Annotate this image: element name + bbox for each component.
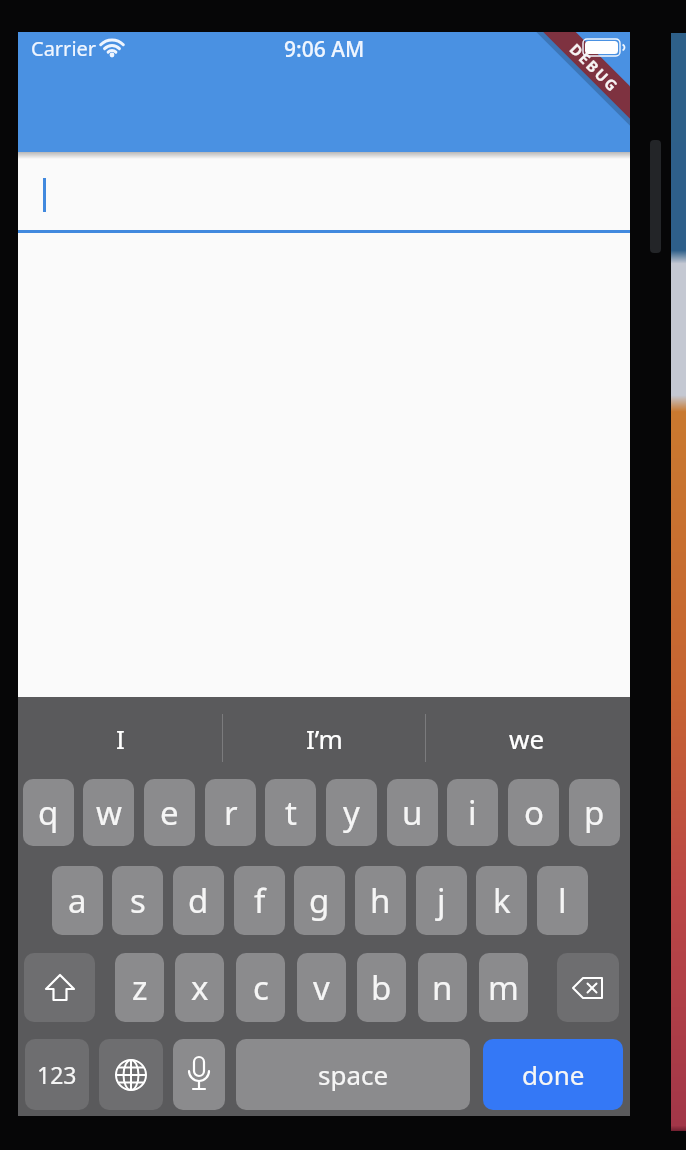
button[interactable] [18, 158, 630, 233]
staticText: 9:06 AM [284, 35, 365, 64]
staticText: v [313, 965, 330, 1010]
staticText: q [38, 790, 59, 835]
button[interactable]: i [447, 779, 498, 846]
staticText: y [343, 790, 360, 835]
button[interactable] [99, 1039, 163, 1110]
button[interactable]: done [483, 1039, 623, 1110]
staticText: DEBUG [566, 39, 624, 97]
button[interactable]: c [236, 953, 285, 1022]
staticText: n [432, 965, 453, 1010]
button[interactable] [557, 953, 619, 1022]
staticText: k [493, 878, 511, 923]
staticText: d [188, 878, 209, 923]
button[interactable]: f [234, 866, 285, 935]
button[interactable]: x [175, 953, 224, 1022]
staticText: o [524, 790, 544, 835]
button[interactable]: v [297, 953, 346, 1022]
staticText: z [132, 965, 148, 1010]
staticText: b [371, 965, 392, 1010]
staticText: we [509, 721, 545, 756]
button[interactable]: m [479, 953, 528, 1022]
button[interactable]: I [22, 707, 218, 769]
button[interactable]: b [357, 953, 406, 1022]
button[interactable]: j [416, 866, 467, 935]
button[interactable]: g [294, 866, 345, 935]
button[interactable]: q [23, 779, 74, 846]
staticText: x [191, 965, 209, 1010]
button[interactable]: n [418, 953, 467, 1022]
staticText: a [68, 878, 87, 923]
staticText: I’m [306, 721, 343, 756]
button[interactable]: w [83, 779, 134, 846]
staticText: g [309, 878, 330, 923]
button[interactable]: r [205, 779, 256, 846]
button[interactable]: d [173, 866, 224, 935]
staticText: done [522, 1057, 585, 1092]
button[interactable]: z [115, 953, 164, 1022]
staticText: w [96, 790, 122, 835]
staticText: s [130, 878, 146, 923]
staticText: j [437, 878, 446, 923]
staticText: m [488, 965, 519, 1010]
button[interactable]: I’m [226, 707, 422, 769]
button[interactable]: l [537, 866, 588, 935]
button[interactable]: space [236, 1039, 470, 1110]
button[interactable]: h [355, 866, 406, 935]
staticText: t [285, 790, 297, 835]
staticText: Carrier [31, 35, 97, 62]
staticText: c [253, 965, 269, 1010]
staticText: f [254, 878, 266, 923]
button[interactable]: k [476, 866, 527, 935]
staticText: 123 [37, 1059, 77, 1090]
button[interactable] [173, 1039, 225, 1110]
button[interactable]: o [508, 779, 559, 846]
button[interactable]: a [52, 866, 103, 935]
button[interactable]: we [429, 707, 625, 769]
staticText: l [558, 878, 567, 923]
staticText: h [370, 878, 391, 923]
button[interactable]: e [144, 779, 195, 846]
button[interactable] [24, 953, 95, 1022]
staticText: u [402, 790, 423, 835]
button[interactable]: t [265, 779, 316, 846]
staticText: r [224, 790, 238, 835]
button[interactable]: u [387, 779, 438, 846]
button[interactable]: s [112, 866, 163, 935]
staticText: I [116, 721, 125, 756]
button[interactable]: p [569, 779, 620, 846]
staticText: space [318, 1057, 389, 1092]
staticText: e [160, 790, 179, 835]
staticText: i [468, 790, 477, 835]
button[interactable]: 123 [25, 1039, 89, 1110]
button[interactable]: y [326, 779, 377, 846]
staticText: p [584, 790, 605, 835]
